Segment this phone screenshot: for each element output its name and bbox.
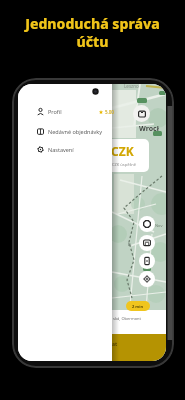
button[interactable]: Profil bbox=[37, 106, 114, 117]
staticText: účtu bbox=[0, 32, 185, 51]
button[interactable] bbox=[139, 216, 155, 232]
staticText: Profil bbox=[48, 108, 62, 115]
button[interactable] bbox=[139, 235, 155, 251]
staticText: ská, Obermont bbox=[113, 316, 141, 321]
staticText: Nov bbox=[155, 223, 163, 228]
button[interactable]: CZK bbox=[112, 139, 149, 172]
button[interactable]: at bbox=[112, 334, 166, 361]
button[interactable]: Nastavení bbox=[37, 144, 111, 155]
staticText: Leszno bbox=[124, 84, 139, 89]
button[interactable] bbox=[133, 105, 150, 122]
button[interactable] bbox=[139, 253, 155, 269]
staticText: CZK úspěšně bbox=[112, 162, 137, 167]
staticText: B. bbox=[128, 242, 132, 247]
staticText: Wrocł bbox=[139, 124, 159, 134]
button[interactable] bbox=[139, 271, 155, 287]
staticText: 2 min bbox=[132, 304, 144, 309]
staticText: Nastavení bbox=[48, 146, 74, 153]
staticText: Jednoduchá správa bbox=[0, 14, 185, 33]
button[interactable]: 2 min bbox=[126, 301, 150, 311]
staticText: 5.00 bbox=[105, 109, 114, 115]
button[interactable]: Nedávné objednávky bbox=[37, 126, 111, 137]
staticText: at bbox=[112, 341, 118, 348]
staticText: Nedávné objednávky bbox=[48, 128, 103, 135]
staticText: CZK bbox=[112, 143, 134, 159]
